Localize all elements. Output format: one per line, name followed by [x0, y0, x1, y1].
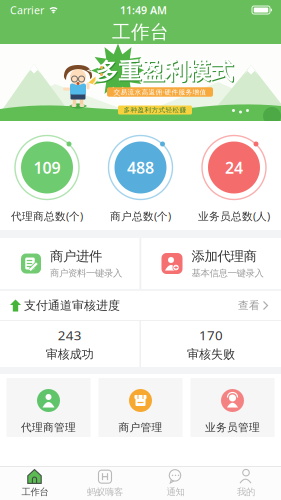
button[interactable]: 支付通道审核进度 [0, 291, 281, 320]
staticText: Carrier [10, 3, 44, 17]
staticText: 109 [33, 157, 60, 178]
staticText: 基本信息一键录入 [191, 267, 263, 279]
staticText: 工作台 [112, 20, 169, 43]
button[interactable]: 通知 [140, 467, 210, 500]
staticText: 工作台 [21, 486, 48, 498]
staticText: 多种盈利方式轻松赚 [123, 106, 186, 114]
button[interactable]: 商户进件 [0, 238, 139, 289]
staticText: 通知 [166, 486, 184, 498]
button[interactable]: 业务员管理 [190, 378, 274, 437]
staticText: 支付通道审核进度 [24, 298, 120, 313]
button[interactable]: 代理商管理 [6, 378, 90, 437]
staticText: 审核失败 [187, 347, 235, 362]
staticText: 488 [127, 157, 154, 178]
staticText: 170 [199, 326, 223, 344]
button[interactable]: 我的 [211, 467, 281, 500]
staticText: 商户管理 [118, 421, 162, 434]
staticText: 243 [58, 326, 82, 344]
button[interactable]: 添加代理商 [141, 238, 281, 289]
staticText: 商户总数(个) [110, 209, 171, 223]
staticText: 商户进件 [50, 248, 102, 264]
staticText: 交易流水高返佣·硬件服务增值 [113, 88, 206, 96]
staticText: 添加代理商 [191, 248, 256, 264]
button[interactable]: 工作台 [0, 467, 70, 500]
staticText: 24 [225, 157, 243, 178]
button[interactable]: 蚂蚁嗨客 [70, 467, 140, 500]
staticText: 商户资料一键录入 [50, 267, 122, 279]
staticText: 审核成功 [46, 347, 94, 362]
staticText: 业务员管理 [205, 421, 260, 434]
staticText: 代理商总数(个) [11, 209, 83, 223]
staticText: 蚂蚁嗨客 [87, 486, 123, 498]
staticText: 业务员总数(人) [198, 209, 270, 223]
staticText: 多重盈利模式 [96, 59, 234, 86]
staticText: 多重盈利模式 [95, 58, 233, 85]
staticText: 查看 [238, 299, 260, 312]
staticText: 代理商管理 [21, 421, 76, 434]
staticText: 11:49 AM [120, 3, 167, 17]
staticText: 我的 [237, 486, 255, 498]
button[interactable]: 商户管理 [98, 378, 182, 437]
